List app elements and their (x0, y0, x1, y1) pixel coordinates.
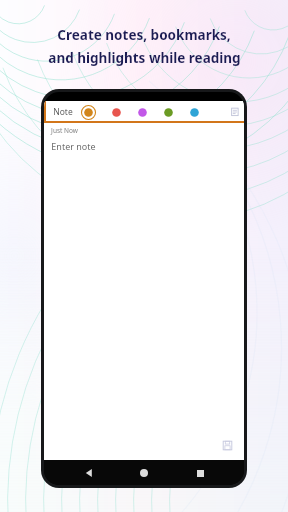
button[interactable]: Colour swatch (111, 107, 122, 118)
button[interactable]: Colour swatch (137, 107, 148, 118)
button[interactable]: Colour swatch (163, 107, 174, 118)
staticText: Enter note (51, 140, 96, 152)
button[interactable]: Home (133, 462, 155, 484)
staticText: Create notes, bookmarks, (57, 26, 231, 44)
button[interactable]: Back (78, 462, 100, 484)
button[interactable]: Recent apps (189, 462, 211, 484)
staticText: and highlights while reading (48, 49, 241, 67)
staticText: Just Now (51, 126, 78, 135)
button[interactable]: Colour swatch (81, 105, 96, 120)
button[interactable]: Colour swatch (189, 107, 200, 118)
button[interactable]: Note options (229, 106, 241, 118)
staticText: Note (53, 106, 73, 118)
button[interactable]: Save note (221, 439, 234, 452)
